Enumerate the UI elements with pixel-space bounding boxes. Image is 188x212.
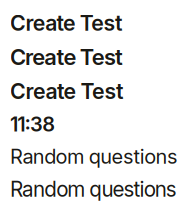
staticText: Create Test [10,10,123,36]
staticText: Create Test [10,44,123,70]
staticText: Random questions [10,177,177,202]
staticText: Random questions [10,144,177,169]
staticText: 11:38 [10,112,55,136]
staticText: Create Test [10,78,124,104]
